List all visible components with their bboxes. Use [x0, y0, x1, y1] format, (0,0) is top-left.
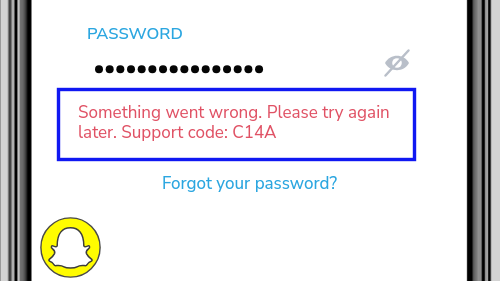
button[interactable]: Forgot your password? [162, 172, 338, 195]
button[interactable]: Snapchat [40, 217, 101, 278]
staticText: PASSWORD [87, 22, 183, 45]
button[interactable]: Hide password [382, 48, 412, 78]
staticText: Something went wrong. Please try again l… [78, 101, 396, 144]
